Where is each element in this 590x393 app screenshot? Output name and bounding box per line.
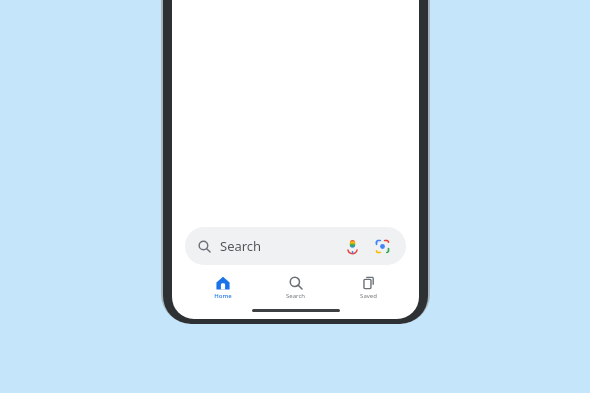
button[interactable]: Voice search (340, 234, 364, 258)
staticText: Saved (360, 292, 377, 300)
button[interactable]: Home (186, 273, 259, 303)
staticText: Search (286, 292, 305, 300)
button[interactable]: Saved (332, 273, 405, 303)
button[interactable]: Search (185, 227, 406, 265)
staticText: Home (214, 292, 232, 300)
button[interactable]: Search (259, 273, 332, 303)
button[interactable]: Google Lens (370, 234, 394, 258)
staticText: Search (220, 237, 262, 255)
